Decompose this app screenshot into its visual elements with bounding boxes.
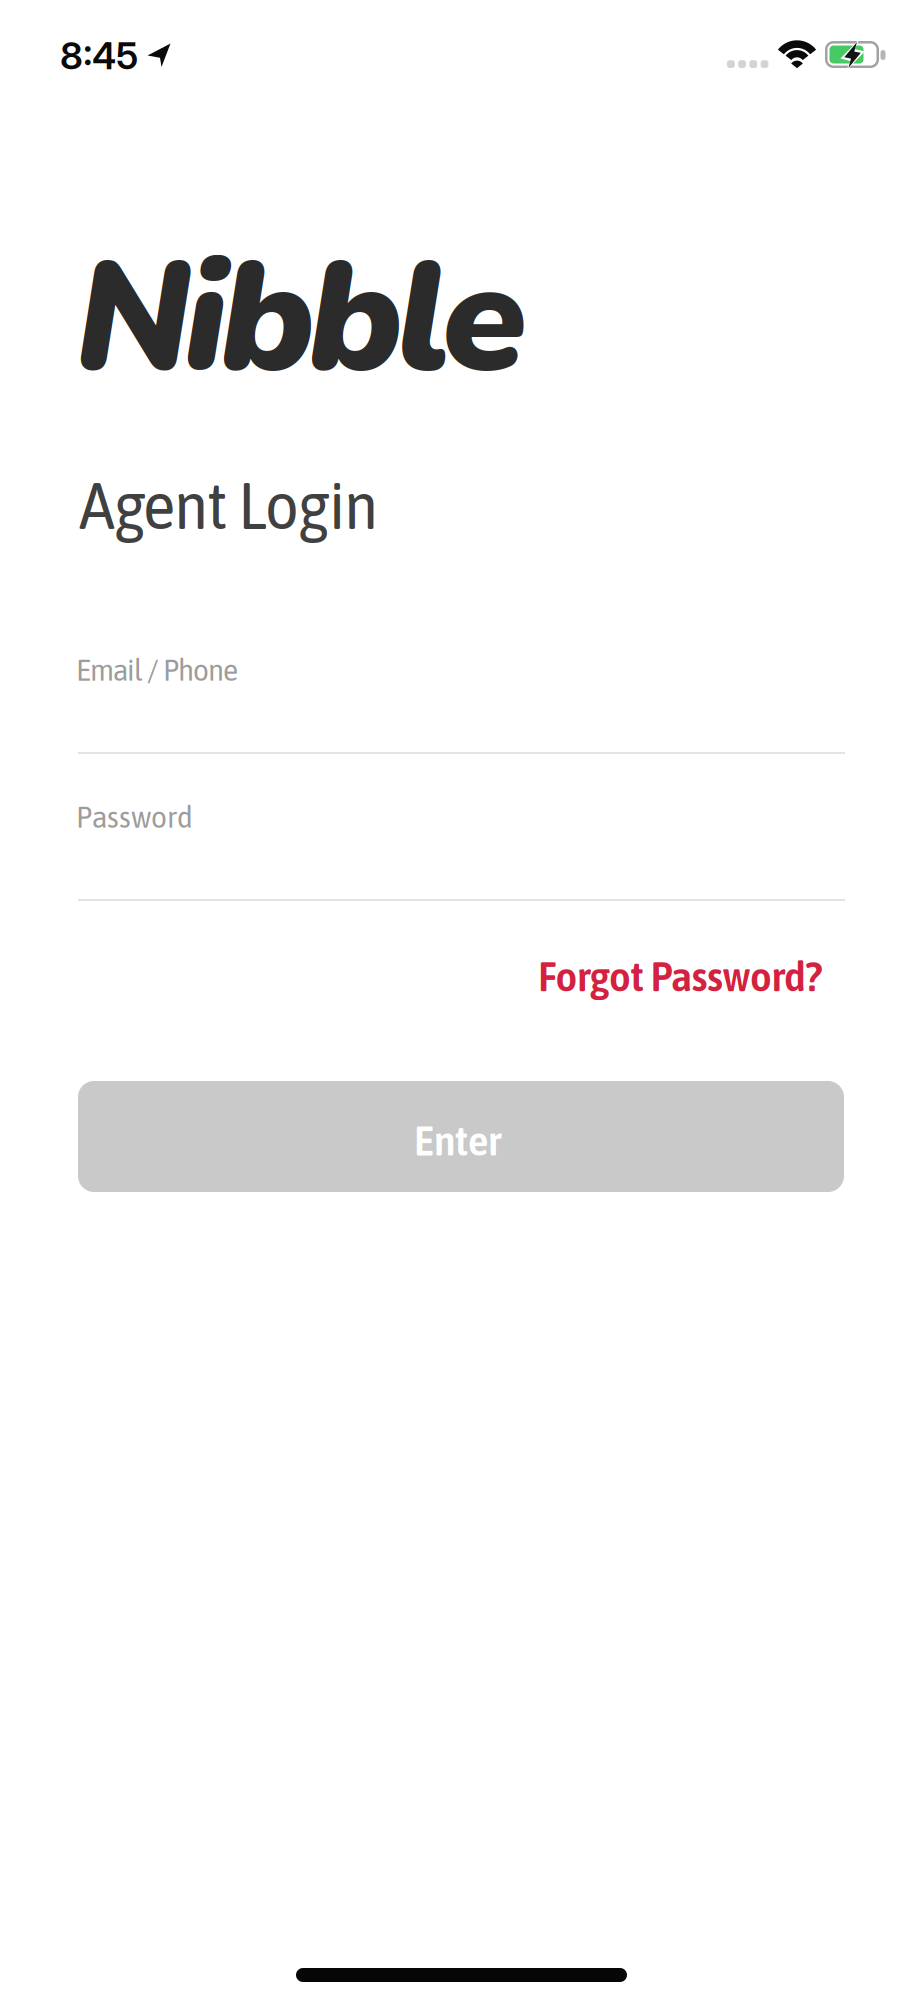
staticText: Nibble [75,214,527,423]
button[interactable]: Enter [78,1081,844,1192]
staticText: Password [76,799,193,834]
staticText: Email / Phone [76,652,238,687]
button[interactable]: Email / Phone [76,652,843,755]
staticText: 8:45 [60,33,138,78]
button[interactable]: Forgot Password? [538,952,822,1000]
staticText: Agent Login [79,468,378,543]
staticText: Enter [414,1117,502,1164]
button[interactable]: Password [76,799,843,902]
staticText: Forgot Password? [538,952,822,1000]
